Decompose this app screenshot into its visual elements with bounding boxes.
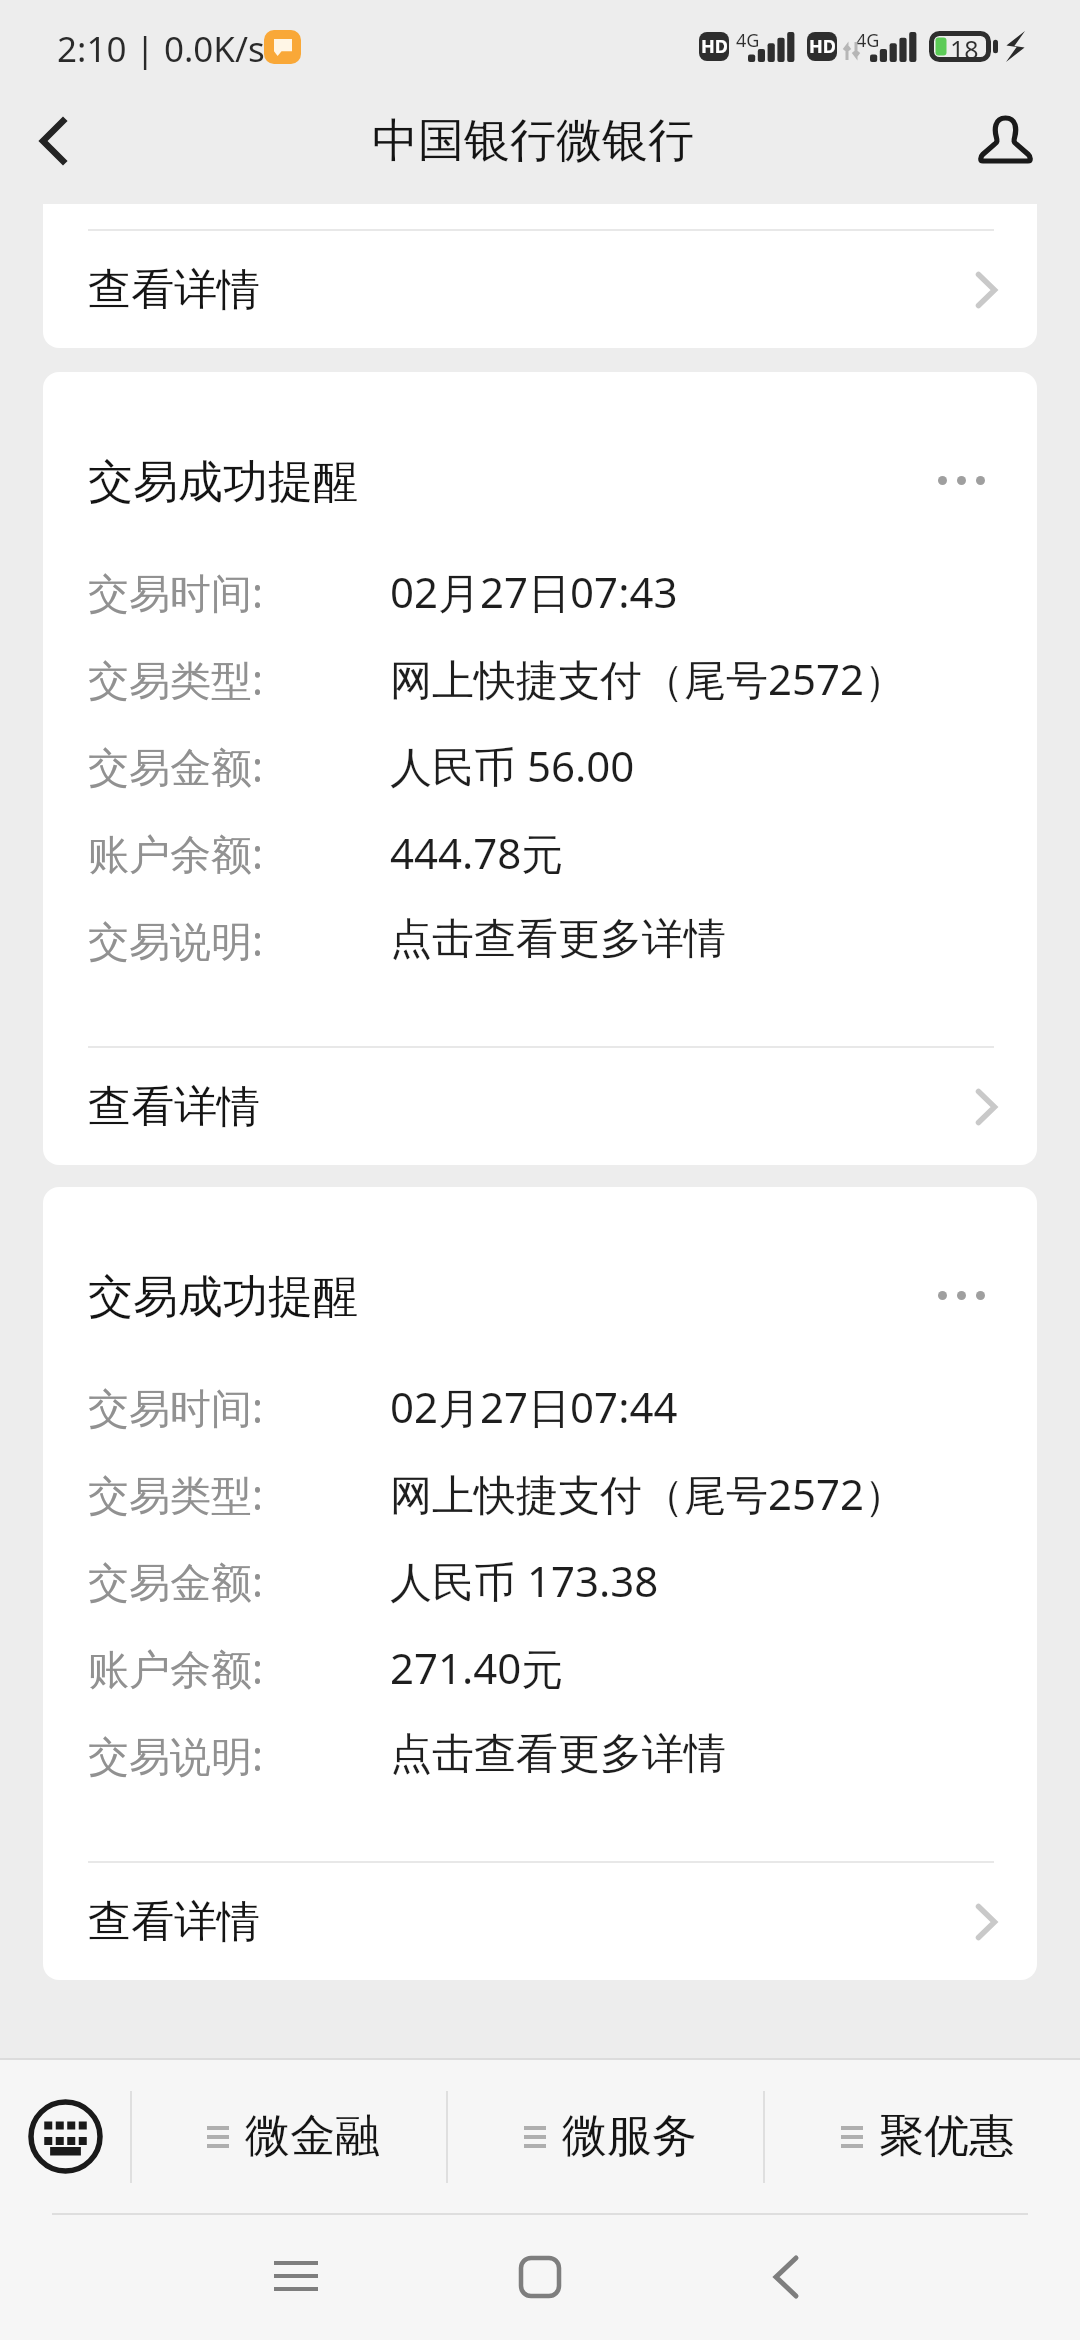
staticText: 账户余额: bbox=[88, 825, 263, 881]
staticText: HD bbox=[809, 34, 836, 59]
staticText: 交易成功提醒 bbox=[88, 1269, 358, 1326]
staticText: 交易金额: bbox=[88, 738, 263, 794]
staticText: 人民币 56.00 bbox=[390, 737, 635, 794]
staticText: 人民币 173.38 bbox=[390, 1552, 659, 1609]
button[interactable]: Recent apps bbox=[236, 2217, 356, 2337]
staticText: 交易成功提醒 bbox=[88, 454, 358, 511]
staticText: 02月27日07:43 bbox=[390, 563, 678, 620]
staticText: 18 bbox=[950, 32, 979, 63]
button[interactable]: 查看详情 bbox=[43, 1048, 1037, 1165]
staticText: 微金融 bbox=[245, 2108, 380, 2165]
staticText: 4G bbox=[736, 28, 760, 53]
staticText: 02月27日07:44 bbox=[390, 1378, 678, 1435]
staticText: 交易时间: bbox=[88, 1379, 263, 1435]
staticText: 查看详情 bbox=[88, 1080, 260, 1134]
button[interactable]: Home bbox=[480, 2217, 600, 2337]
staticText: 网上快捷支付（尾号2572） bbox=[390, 650, 907, 707]
button[interactable]: Keyboard bbox=[0, 2060, 130, 2213]
staticText: 查看详情 bbox=[88, 1895, 260, 1949]
button[interactable]: Back bbox=[8, 110, 97, 172]
button[interactable]: 微服务 bbox=[448, 2060, 763, 2213]
staticText: 账户余额: bbox=[88, 1640, 263, 1696]
staticText: 交易说明: bbox=[88, 1727, 263, 1783]
button[interactable]: 聚优惠 bbox=[765, 2060, 1080, 2213]
button[interactable]: 微金融 bbox=[132, 2060, 446, 2213]
button[interactable]: 查看详情 bbox=[43, 231, 1037, 348]
staticText: 点击查看更多详情 bbox=[390, 913, 726, 966]
staticText: 交易类型: bbox=[88, 1466, 263, 1522]
staticText: 网上快捷支付（尾号2572） bbox=[390, 1465, 907, 1522]
staticText: 微服务 bbox=[562, 2108, 697, 2165]
staticText: 交易类型: bbox=[88, 651, 263, 707]
staticText: 聚优惠 bbox=[879, 2108, 1014, 2165]
staticText: 2:10 | 0.0K/s bbox=[57, 25, 265, 73]
staticText: 中国银行微银行 bbox=[372, 112, 694, 170]
staticText: 4G bbox=[856, 28, 880, 53]
staticText: 点击查看更多详情 bbox=[390, 1728, 726, 1781]
staticText: 444.78元 bbox=[390, 824, 564, 881]
staticText: 271.40元 bbox=[390, 1639, 564, 1696]
button[interactable]: Back bbox=[726, 2217, 846, 2337]
button[interactable]: Profile bbox=[960, 106, 1050, 172]
staticText: 交易时间: bbox=[88, 564, 263, 620]
staticText: 交易金额: bbox=[88, 1553, 263, 1609]
button[interactable]: 查看详情 bbox=[43, 1863, 1037, 1980]
staticText: 交易说明: bbox=[88, 912, 263, 968]
staticText: HD bbox=[701, 34, 728, 59]
staticText: 查看详情 bbox=[88, 263, 260, 317]
